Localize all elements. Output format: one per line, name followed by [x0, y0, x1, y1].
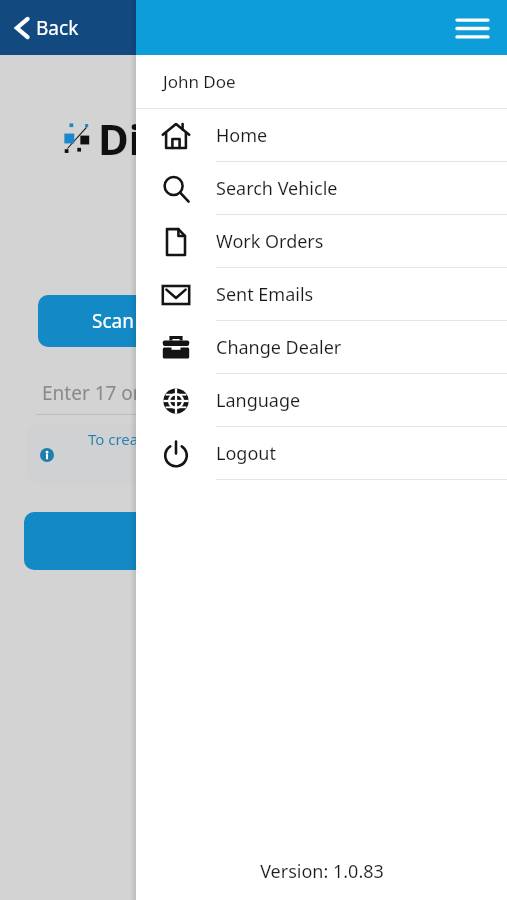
button[interactable]: Home	[136, 109, 507, 162]
staticText: Enter 17 or	[42, 380, 141, 406]
button[interactable]: Language	[136, 374, 507, 427]
staticText: Sent Emails	[216, 282, 314, 307]
staticText: Language	[216, 388, 301, 413]
button[interactable]	[24, 512, 224, 570]
button[interactable]: Back	[14, 15, 79, 41]
staticText: Home	[216, 123, 268, 148]
button[interactable]: Work Orders	[136, 215, 507, 268]
button[interactable]: Scan Code	[38, 295, 238, 347]
button[interactable]: Search Vehicle	[136, 162, 507, 215]
staticText: Change Dealer	[216, 335, 342, 360]
staticText: Back	[36, 15, 79, 41]
staticText: Logout	[216, 441, 276, 466]
staticText: Search Vehicle	[216, 176, 338, 201]
staticText: Di	[98, 110, 142, 167]
staticText: To create	[88, 429, 153, 449]
button[interactable]: Sent Emails	[136, 268, 507, 321]
staticText: Version: 1.0.83	[260, 859, 384, 884]
staticText: John Doe	[163, 70, 236, 93]
button[interactable]: Change Dealer	[136, 321, 507, 374]
staticText: Work Orders	[216, 229, 324, 254]
button[interactable]: John Doe	[136, 55, 507, 108]
button[interactable]: Logout	[136, 427, 507, 480]
button[interactable]: Menu	[449, 5, 495, 51]
staticText: Scan Code	[92, 308, 185, 334]
